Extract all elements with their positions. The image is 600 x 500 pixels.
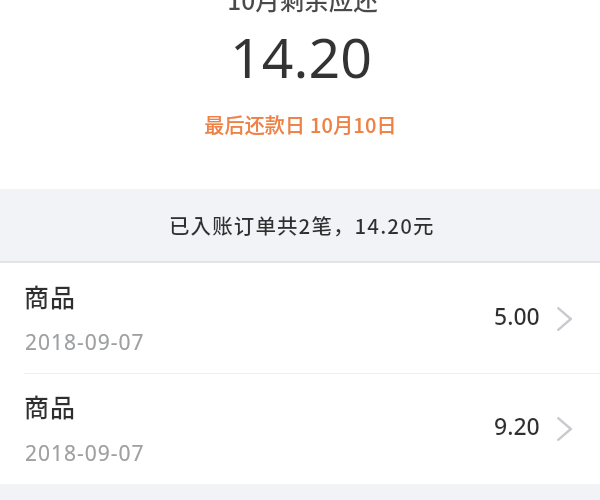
button[interactable]: 商品 [0,374,600,484]
other: Open order detail [557,307,572,331]
other: Open order detail [557,417,572,441]
staticText: 商品 [24,278,77,314]
staticText: 2018-09-07 [25,439,145,468]
button[interactable]: 商品 [0,263,600,374]
staticText: 最后还款日 10月10日 [204,110,397,139]
staticText: 商品 [24,388,77,424]
staticText: 14.20 [230,19,372,95]
staticText: 已入账订单共2笔，14.20元 [169,210,435,240]
staticText: 9.20 [494,410,540,441]
staticText: 2018-09-07 [25,328,145,357]
button[interactable]: 已入账订单共2笔，14.20元 [0,189,600,261]
staticText: 5.00 [494,300,540,331]
staticText: 10月剩余应还 [227,0,378,17]
